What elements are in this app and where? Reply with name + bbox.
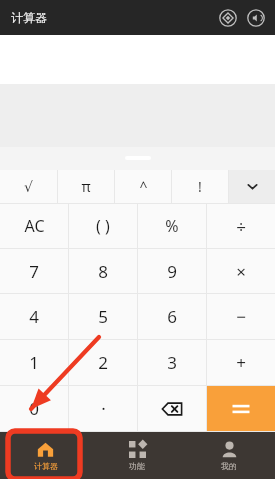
- button[interactable]: 我的: [183, 432, 275, 479]
- button[interactable]: ·: [69, 386, 137, 431]
- button[interactable]: ( ): [69, 204, 137, 248]
- staticText: −: [236, 305, 246, 328]
- staticText: 0: [29, 397, 39, 420]
- staticText: !: [198, 177, 202, 196]
- staticText: ÷: [236, 215, 246, 238]
- staticText: 计算器: [34, 461, 58, 471]
- button[interactable]: 功能: [91, 432, 183, 479]
- staticText: π: [81, 177, 91, 196]
- staticText: 4: [29, 305, 39, 328]
- button[interactable]: Sound: [245, 7, 267, 29]
- staticText: ( ): [96, 215, 110, 237]
- button[interactable]: ^: [115, 170, 171, 203]
- staticText: 9: [167, 260, 177, 283]
- staticText: 计算器: [11, 10, 47, 25]
- staticText: 7: [29, 260, 39, 283]
- button[interactable]: !: [172, 170, 228, 203]
- staticText: 我的: [221, 461, 237, 471]
- button[interactable]: AC: [0, 204, 68, 248]
- button[interactable]: 4: [0, 294, 68, 339]
- staticText: ×: [236, 260, 246, 283]
- button[interactable]: 9: [138, 249, 206, 293]
- button[interactable]: 计算器: [0, 432, 91, 479]
- button[interactable]: 5: [69, 294, 137, 339]
- button[interactable]: −: [207, 294, 275, 339]
- staticText: 8: [98, 260, 108, 283]
- staticText: +: [236, 351, 246, 374]
- button[interactable]: 3: [138, 340, 206, 385]
- staticText: %: [165, 215, 179, 237]
- button[interactable]: ÷: [207, 204, 275, 248]
- button[interactable]: Collapse: [229, 170, 275, 203]
- button[interactable]: 8: [69, 249, 137, 293]
- button[interactable]: Theme: [217, 7, 239, 29]
- button[interactable]: √: [0, 170, 57, 203]
- button[interactable]: Backspace: [138, 386, 206, 431]
- staticText: 5: [98, 305, 108, 328]
- button[interactable]: 0: [0, 386, 68, 431]
- button[interactable]: %: [138, 204, 206, 248]
- staticText: AC: [24, 215, 45, 237]
- button[interactable]: ×: [207, 249, 275, 293]
- staticText: ·: [101, 397, 106, 420]
- button[interactable]: +: [207, 340, 275, 385]
- button[interactable]: 6: [138, 294, 206, 339]
- staticText: 6: [167, 305, 177, 328]
- button[interactable]: Equals: [207, 386, 275, 431]
- staticText: 功能: [129, 461, 145, 471]
- staticText: 3: [167, 351, 177, 374]
- staticText: 1: [29, 351, 39, 374]
- staticText: √: [24, 179, 33, 195]
- staticText: ^: [139, 177, 148, 196]
- staticText: 2: [98, 351, 108, 374]
- button[interactable]: 7: [0, 249, 68, 293]
- button[interactable]: 1: [0, 340, 68, 385]
- button[interactable]: π: [58, 170, 114, 203]
- button[interactable]: 2: [69, 340, 137, 385]
